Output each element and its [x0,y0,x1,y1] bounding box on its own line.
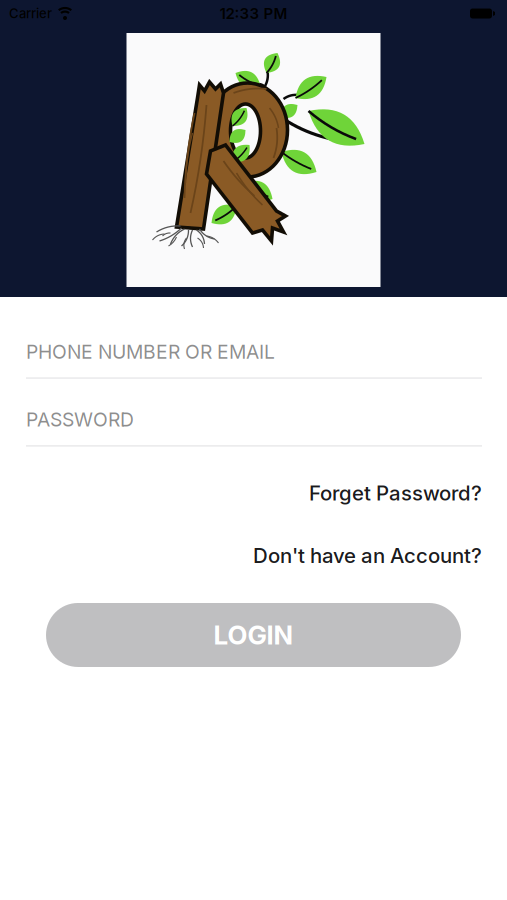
staticText: LOGIN [213,619,293,651]
button[interactable]: LOGIN [46,603,461,667]
staticText: Don't have an Account? [253,543,482,568]
button[interactable]: PASSWORD [26,408,482,447]
button[interactable]: Forget Password? [309,481,482,505]
staticText: PASSWORD [26,408,134,431]
button[interactable]: Don't have an Account? [253,543,482,568]
staticText: Forget Password? [309,481,482,505]
button[interactable]: PHONE NUMBER OR EMAIL [26,340,482,379]
staticText: 12:33 PM [219,4,287,22]
staticText: PHONE NUMBER OR EMAIL [26,340,275,363]
staticText: Carrier [9,6,52,21]
